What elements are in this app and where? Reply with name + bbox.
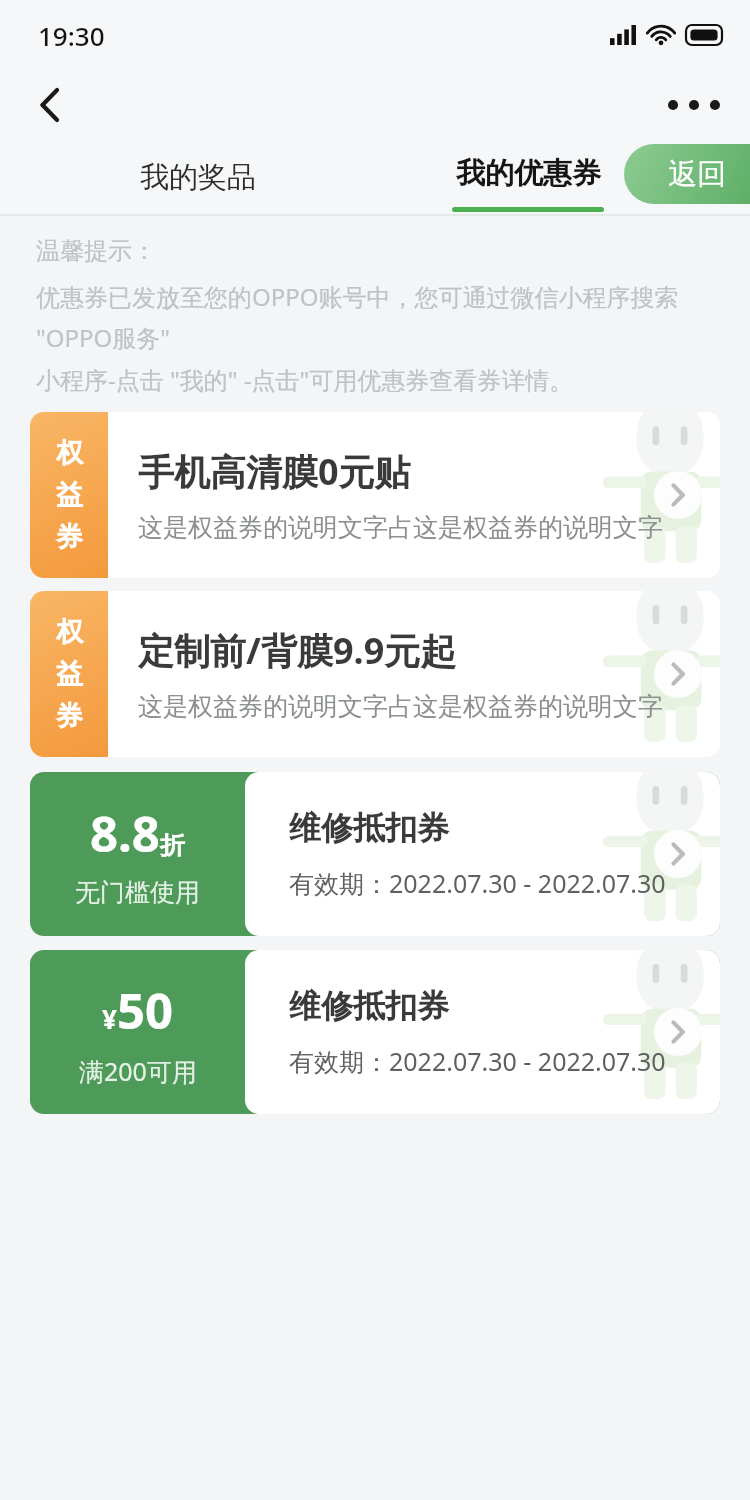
staticText: 维修抵扣券 xyxy=(289,986,449,1026)
staticText: 小程序-点击 "我的" -点击"可用优惠券查看券详情。 xyxy=(36,363,574,396)
staticText: 满200可用 xyxy=(79,1054,197,1088)
button[interactable]: 权 xyxy=(30,412,720,578)
staticText: 券 xyxy=(56,520,83,554)
button[interactable]: 我的优惠券 xyxy=(430,140,626,214)
staticText: 无门槛使用 xyxy=(75,877,200,908)
staticText: 有效期：2022.07.30 - 2022.07.30 xyxy=(289,866,666,900)
staticText: ¥ xyxy=(102,1001,117,1036)
staticText: 8.8 xyxy=(90,800,160,867)
staticText: 返回 xyxy=(668,156,726,193)
button[interactable]: 8.8 xyxy=(30,772,720,936)
staticText: 益 xyxy=(56,657,83,691)
staticText: 权 xyxy=(56,436,83,470)
staticText: 维修抵扣券 xyxy=(289,808,449,848)
staticText: 这是权益券的说明文字占这是权益券的说明文字 xyxy=(138,691,663,722)
button[interactable]: More options xyxy=(664,80,724,130)
button[interactable]: 返回 xyxy=(624,144,750,204)
button[interactable]: 我的奖品 xyxy=(100,140,296,214)
staticText: 手机高清膜0元贴 xyxy=(138,447,411,496)
staticText: 权 xyxy=(56,615,83,649)
staticText: 券 xyxy=(56,699,83,733)
staticText: 我的奖品 xyxy=(140,159,256,196)
staticText: 50 xyxy=(117,977,174,1044)
staticText: 有效期：2022.07.30 - 2022.07.30 xyxy=(289,1044,666,1078)
staticText: 这是权益券的说明文字占这是权益券的说明文字 xyxy=(138,512,663,543)
button[interactable]: ¥ xyxy=(30,950,720,1114)
staticText: 益 xyxy=(56,478,83,512)
staticText: 优惠券已发放至您的OPPO账号中，您可通过微信小程序搜索 "OPPO服务" xyxy=(36,280,720,355)
staticText: 定制前/背膜9.9元起 xyxy=(138,626,457,675)
staticText: 折 xyxy=(160,830,185,861)
staticText: 温馨提示： xyxy=(36,236,156,266)
staticText: 19:30 xyxy=(38,18,105,53)
button[interactable]: Back xyxy=(22,77,78,133)
button[interactable]: 权 xyxy=(30,591,720,757)
staticText: 我的优惠券 xyxy=(456,155,601,192)
